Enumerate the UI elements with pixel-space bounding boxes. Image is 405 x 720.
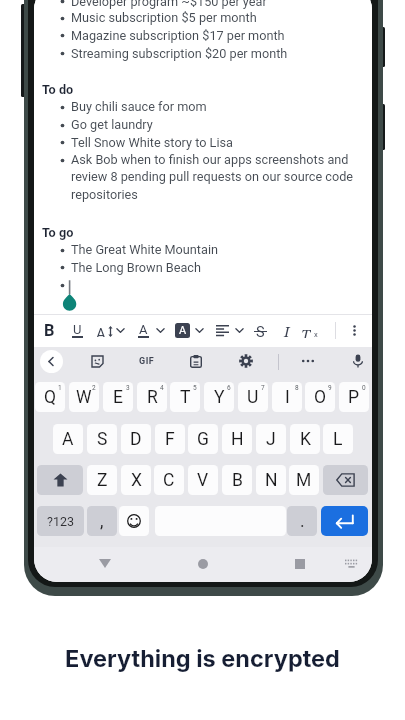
button[interactable]: Q (35, 382, 65, 412)
button[interactable]: ?123 (37, 506, 84, 536)
button[interactable]: N (256, 465, 286, 495)
button[interactable]: Stickers (84, 348, 110, 374)
button[interactable]: T (170, 382, 200, 412)
button[interactable]: Recent apps (285, 547, 315, 580)
staticText: Magazine subscription $17 per month (71, 28, 285, 43)
button[interactable]: Back (40, 350, 63, 373)
staticText: A (96, 325, 106, 337)
button[interactable]: I (272, 382, 302, 412)
button[interactable]: B (222, 465, 252, 495)
button[interactable]: M (289, 465, 319, 495)
button[interactable]: G (188, 424, 218, 454)
button[interactable]: Change keyboard (336, 547, 366, 580)
button[interactable]: A (53, 424, 83, 454)
staticText: G (197, 429, 209, 450)
button[interactable]: Text colour options (152, 314, 168, 347)
button[interactable]: Strikethrough (247, 314, 273, 347)
button[interactable]: V (188, 465, 218, 495)
staticText: ?123 (47, 514, 74, 529)
staticText: S (97, 429, 108, 450)
staticText: S (256, 324, 265, 338)
button[interactable]: GIF (134, 348, 160, 374)
button[interactable]: Bold (36, 314, 62, 347)
button[interactable]: L (323, 424, 353, 454)
button[interactable]: S (87, 424, 117, 454)
staticText: Tell Snow White story to Lisa (71, 135, 233, 150)
button[interactable]: Highlight (171, 314, 193, 347)
button[interactable]: E (103, 382, 133, 412)
button[interactable]: Highlight options (191, 314, 207, 347)
staticText: , (100, 511, 104, 532)
staticText: J (266, 429, 276, 450)
button[interactable]: U (238, 382, 268, 412)
staticText: 8 (295, 384, 299, 392)
button[interactable]: Home (188, 547, 218, 580)
staticText: 7 (261, 384, 265, 392)
button[interactable]: J (256, 424, 286, 454)
staticText: I (284, 321, 290, 341)
button[interactable]: , (87, 506, 117, 536)
staticText: R (147, 387, 158, 408)
staticText: V (197, 470, 209, 491)
staticText: W (76, 387, 92, 408)
button[interactable]: Shift (37, 465, 83, 495)
staticText: A (62, 429, 74, 450)
button[interactable]: Italic (275, 314, 299, 347)
staticText: 3 (126, 384, 130, 392)
button[interactable]: . (287, 506, 317, 536)
button[interactable]: K (290, 424, 320, 454)
button[interactable]: Enter (321, 506, 368, 536)
button[interactable]: Clipboard (183, 348, 209, 374)
button[interactable]: Keyboard settings (233, 348, 259, 374)
staticText: E (113, 387, 123, 408)
staticText: Q (44, 387, 57, 408)
button[interactable]: Text colour (132, 314, 154, 347)
staticText: 0 (362, 384, 366, 392)
button[interactable]: Z (87, 465, 117, 495)
staticText: Everything is encrypted (65, 644, 340, 672)
button[interactable]: P (339, 382, 369, 412)
staticText: 4 (160, 384, 164, 392)
staticText: Music subscription $5 per month (71, 10, 257, 25)
button[interactable]: Text size options (112, 314, 128, 347)
button[interactable]: Back (90, 547, 120, 580)
button[interactable]: More options (342, 314, 366, 347)
staticText: 6 (227, 384, 231, 392)
staticText: Go get laundry (71, 117, 153, 132)
staticText: A (179, 324, 187, 337)
button[interactable]: H (222, 424, 252, 454)
button[interactable]: More (295, 348, 321, 374)
button[interactable]: W (69, 382, 99, 412)
staticText: 2 (92, 384, 96, 392)
button[interactable]: Underline (64, 314, 90, 347)
staticText: 5 (193, 384, 197, 392)
staticText: H (231, 429, 244, 450)
button[interactable]: Backspace (323, 465, 368, 495)
button[interactable]: D (121, 424, 151, 454)
staticText: I (285, 387, 290, 408)
button[interactable]: R (137, 382, 167, 412)
staticText: O (314, 387, 327, 408)
staticText: x (314, 330, 318, 339)
staticText: Y (214, 387, 225, 408)
button[interactable]: O (305, 382, 335, 412)
staticText: L (333, 429, 343, 450)
button[interactable]: C (154, 465, 184, 495)
staticText: The Long Brown Beach (71, 260, 201, 275)
button[interactable]: Alignment (211, 314, 233, 347)
button[interactable]: F (155, 424, 185, 454)
staticText: T (180, 387, 191, 408)
staticText: K (300, 429, 311, 450)
staticText: D (130, 429, 142, 450)
button[interactable]: Y (204, 382, 234, 412)
button[interactable]: Text size (92, 314, 116, 347)
button[interactable]: X (121, 465, 151, 495)
button[interactable]: Clear formatting (297, 314, 323, 347)
button[interactable]: Voice input (345, 348, 371, 374)
button[interactable]: Alignment options (231, 314, 247, 347)
staticText: P (348, 387, 360, 408)
staticText: To do (42, 82, 74, 97)
button[interactable]: Emoji (119, 506, 149, 536)
staticText: 1 (58, 384, 62, 392)
